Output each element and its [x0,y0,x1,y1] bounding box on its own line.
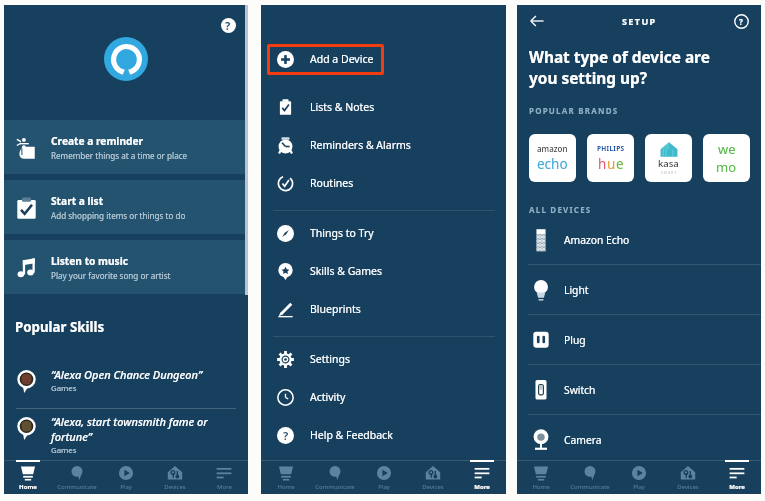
button[interactable]: Devices [150,460,199,494]
staticText: e [616,155,624,173]
staticText: Add shopping items or things to do [51,210,186,221]
staticText: echo [537,155,568,173]
button[interactable]: Play [359,460,408,494]
staticText: Create a reminder [51,134,144,148]
staticText: What type of device are you setting up? [529,47,710,88]
staticText: Plug [564,333,586,347]
button[interactable]: kasa [645,134,692,182]
staticText: Light [564,283,589,297]
button[interactable]: Routines [261,164,506,202]
button[interactable]: More [457,460,506,494]
button[interactable]: Things to Try [261,214,506,252]
staticText: “Alexa Open Chance Dungeon” [51,367,203,382]
button[interactable]: Switch [517,365,761,414]
staticText: Help & Feedback [310,428,393,442]
staticText: Listen to music [51,254,129,268]
button[interactable]: Communicate [565,460,614,494]
button[interactable]: Help [729,9,753,33]
staticText: ? [739,16,743,27]
staticText: we [718,140,736,158]
button[interactable]: Settings [261,340,506,378]
staticText: Activity [310,390,346,404]
button[interactable]: Amazon Echo [517,215,761,264]
button[interactable]: Play [614,460,663,494]
staticText: Blueprints [310,302,361,316]
staticText: Lists & Notes [310,100,375,114]
button[interactable]: Listen to music [4,240,248,294]
staticText: PHILIPS [597,144,625,153]
staticText: Home [532,483,550,491]
staticText: Things to Try [310,226,374,240]
staticText: ALL DEVICES [529,204,592,215]
button[interactable]: Help [216,13,240,37]
button[interactable]: Start a list [4,180,248,234]
staticText: kasa [658,157,679,170]
button[interactable]: Communicate [310,460,359,494]
button[interactable]: PHILIPS [587,134,634,182]
staticText: Play [120,483,132,491]
staticText: Play [633,483,645,491]
button[interactable]: Camera [517,415,761,464]
staticText: “Alexa, start townsmith fame or [51,414,208,429]
staticText: Reminders & Alarms [310,138,411,152]
button[interactable]: Home [517,460,565,494]
staticText: amazon [537,143,568,154]
button[interactable]: More [712,460,761,494]
button[interactable]: Play [101,460,150,494]
button[interactable]: “Alexa Open Chance Dungeon” [4,367,248,394]
staticText: More [474,483,490,491]
staticText: Devices [164,483,186,491]
staticText: SETUP [622,15,657,27]
staticText: Home [277,483,295,491]
button[interactable]: Lists & Notes [261,88,506,126]
button[interactable]: Devices [408,460,457,494]
staticText: POPULAR BRANDS [529,105,619,116]
staticText: Communicate [315,483,355,491]
button[interactable]: Plug [517,315,761,364]
button[interactable]: Home [4,460,52,494]
button[interactable]: Home [261,460,310,494]
staticText: Games [51,383,77,394]
button[interactable]: Back [525,9,549,33]
staticText: ? [283,428,289,443]
button[interactable]: ? [261,416,506,454]
staticText: More [729,483,745,491]
button[interactable]: “Alexa, start townsmith fame or [4,414,248,456]
staticText: Start a list [51,194,104,208]
staticText: Switch [564,383,596,397]
staticText: Settings [310,352,350,366]
button[interactable]: Light [517,265,761,314]
button[interactable]: More [199,460,248,494]
staticText: Remember things at a time or place [51,150,188,161]
button[interactable]: Reminders & Alarms [261,126,506,164]
staticText: Popular Skills [15,318,105,336]
button[interactable]: amazon [529,134,576,182]
button[interactable]: Add a Device [261,40,506,78]
staticText: More [217,483,232,491]
staticText: Amazon Echo [564,233,630,247]
button[interactable]: Create a reminder [4,120,248,174]
staticText: Home [19,483,37,491]
button[interactable]: Skills & Games [261,252,506,290]
staticText: Communicate [570,483,610,491]
staticText: h [598,155,607,173]
button[interactable]: Devices [663,460,712,494]
button[interactable]: Blueprints [261,290,506,328]
staticText: Skills & Games [310,264,382,278]
staticText: mo [716,158,737,176]
button[interactable]: Activity [261,378,506,416]
staticText: Communicate [57,483,97,491]
button[interactable]: we [703,134,750,182]
staticText: Devices [677,483,699,491]
button[interactable]: Communicate [52,460,101,494]
staticText: Play your favorite song or artist [51,270,171,281]
staticText: ? [225,18,231,33]
staticText: Devices [422,483,444,491]
button[interactable]: Alexa [104,37,148,81]
staticText: S M A R T [661,170,677,175]
staticText: fortune” [51,429,92,444]
staticText: Add a Device [310,52,374,66]
staticText: Games [51,445,77,456]
staticText: u [607,155,616,173]
staticText: Camera [564,433,602,447]
